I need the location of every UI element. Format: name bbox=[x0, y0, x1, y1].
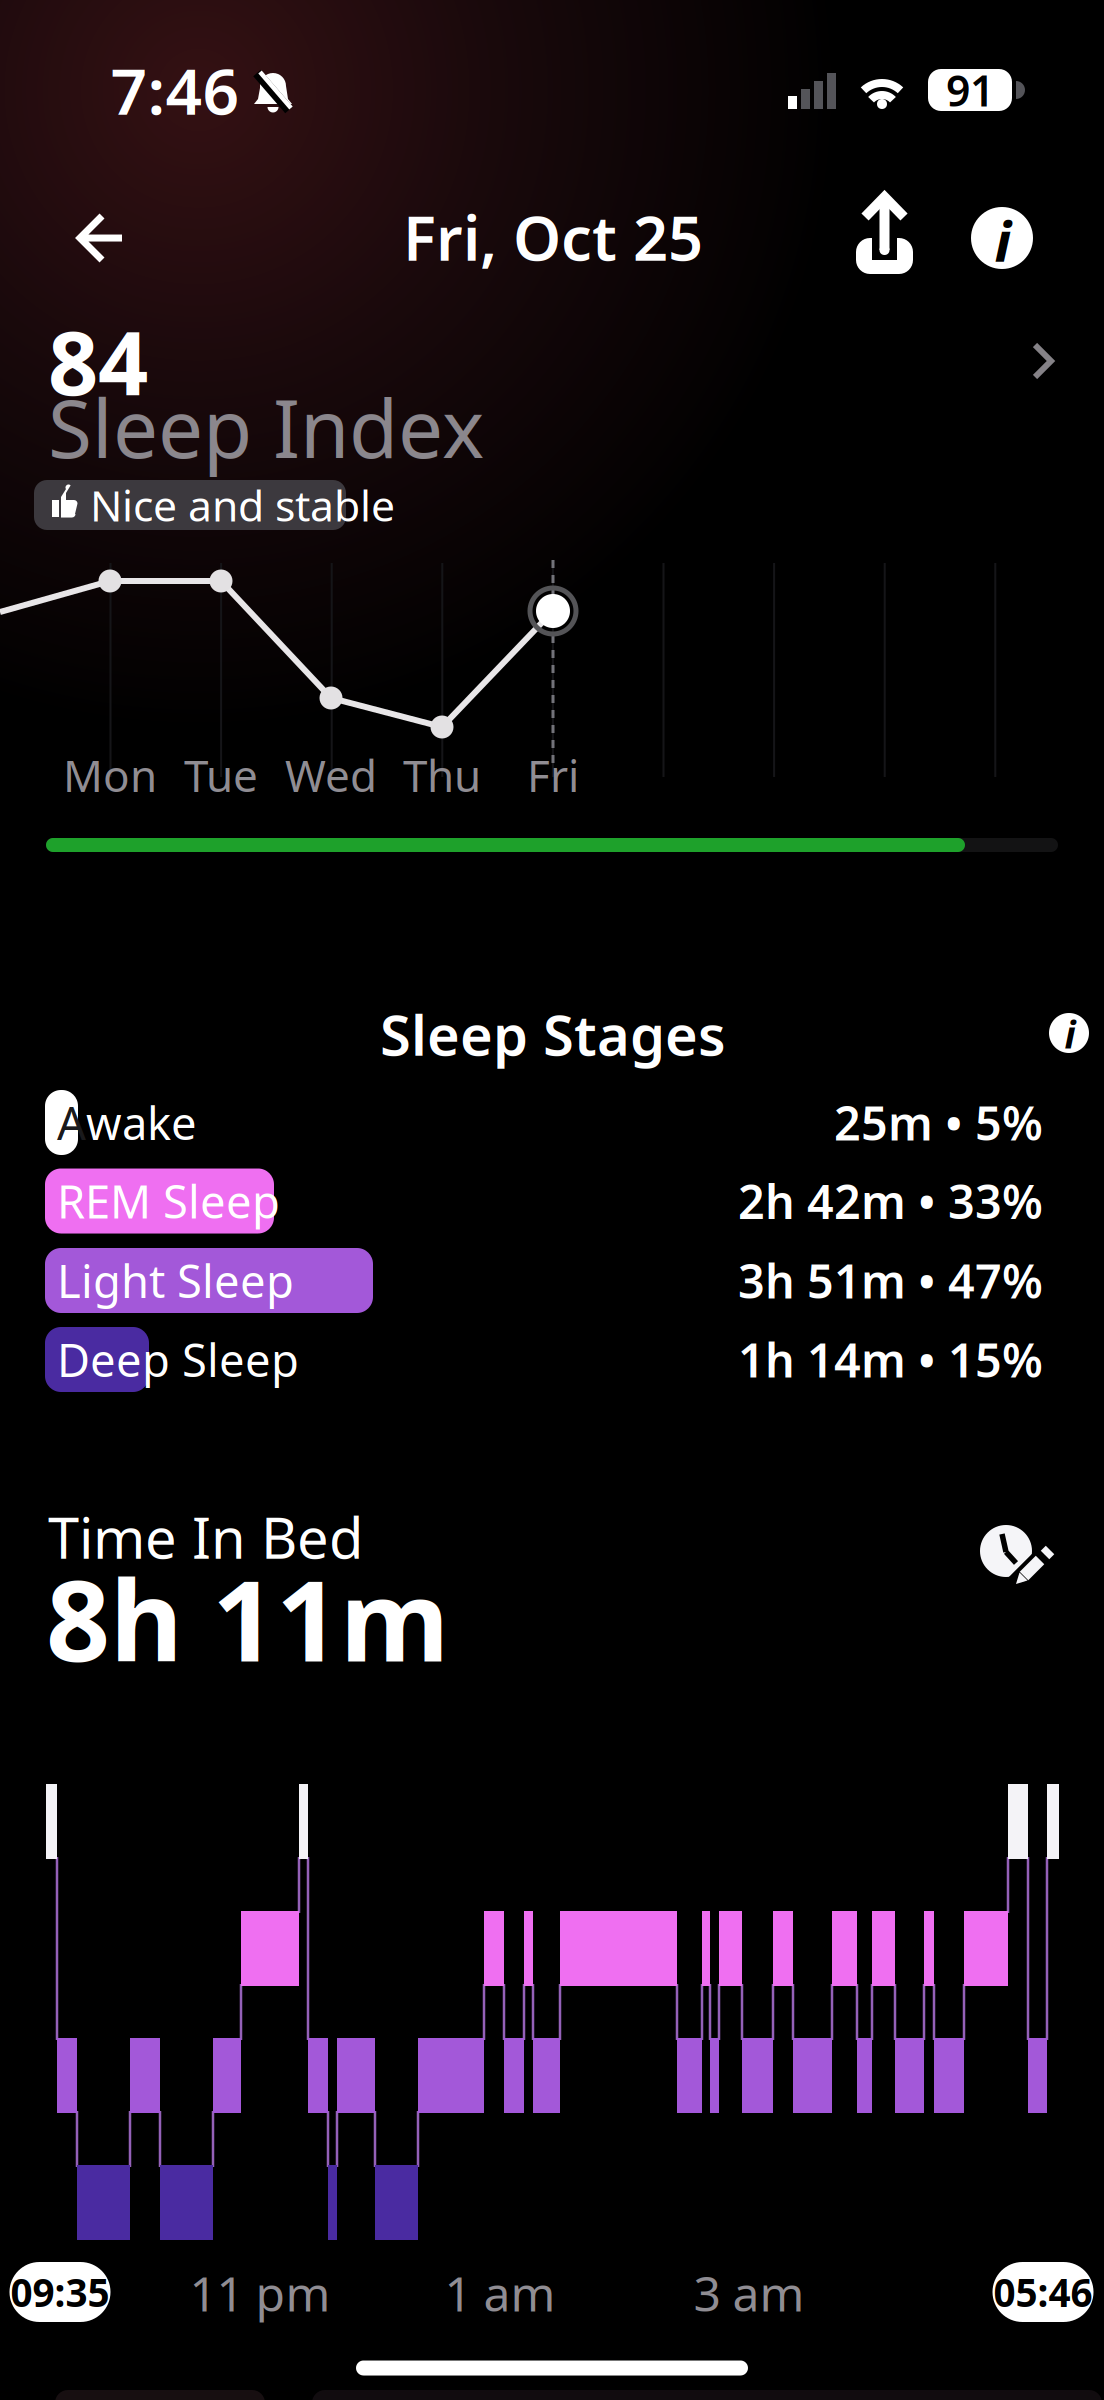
button[interactable]: Share bbox=[838, 184, 930, 288]
staticText: 2h 42m • 33% bbox=[738, 1170, 1043, 1232]
staticText: Mon bbox=[63, 746, 157, 804]
staticText: 1h 14m • 15% bbox=[738, 1328, 1043, 1390]
staticText: 1 am bbox=[444, 2261, 555, 2325]
staticText: REM Sleep bbox=[57, 1171, 280, 1231]
button[interactable]: 05:46 bbox=[992, 2262, 1093, 2322]
staticText: Nice and stable bbox=[90, 477, 395, 533]
staticText: 05:46 bbox=[993, 2266, 1092, 2318]
staticText: Thu bbox=[403, 746, 481, 804]
staticText: 09:35 bbox=[10, 2266, 109, 2318]
staticText: i bbox=[994, 203, 1011, 277]
button[interactable]: 09:35 bbox=[9, 2262, 110, 2322]
button[interactable]: Edit time in bed bbox=[953, 1505, 1063, 1615]
staticText: i bbox=[1064, 1009, 1075, 1059]
staticText: Fri bbox=[527, 746, 579, 804]
staticText: Sleep Index bbox=[48, 374, 484, 480]
staticText: wake bbox=[86, 1092, 197, 1153]
staticText: Wed bbox=[285, 746, 377, 804]
button[interactable]: Info bbox=[967, 203, 1037, 273]
staticText: 91 bbox=[946, 62, 994, 118]
staticText: 8h 11m bbox=[46, 1544, 449, 1692]
button[interactable]: Sleep stages info bbox=[1045, 1009, 1093, 1057]
staticText: Tue bbox=[184, 746, 258, 804]
staticText: 3h 51m • 47% bbox=[738, 1249, 1043, 1311]
staticText: 11 pm bbox=[189, 2261, 330, 2325]
staticText: 25m • 5% bbox=[834, 1091, 1043, 1153]
staticText: Fri, Oct 25 bbox=[403, 196, 703, 278]
staticText: Time In Bed bbox=[48, 1500, 363, 1574]
staticText: A bbox=[57, 1092, 86, 1153]
staticText: Deep Sleep bbox=[57, 1329, 299, 1390]
staticText: Sleep Stages bbox=[380, 997, 726, 1071]
staticText: 84 bbox=[48, 303, 148, 419]
staticText: 7:46 bbox=[110, 47, 239, 132]
button[interactable]: Back bbox=[59, 196, 143, 280]
staticText: 3 am bbox=[693, 2261, 804, 2325]
staticText: Light Sleep bbox=[57, 1250, 294, 1311]
button[interactable]: Sleep Index 84, Nice and stable bbox=[0, 290, 1104, 560]
